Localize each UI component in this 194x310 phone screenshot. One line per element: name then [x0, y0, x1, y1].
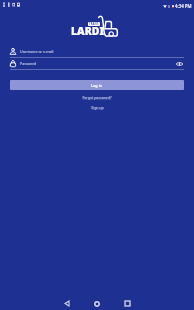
button[interactable]: Home [86, 294, 108, 310]
button[interactable]: Log in [10, 80, 184, 90]
staticText: Password [20, 61, 37, 66]
staticText: Username or e-mail [20, 49, 54, 54]
button[interactable]: Password [10, 58, 184, 69]
button[interactable]: Recents [116, 294, 138, 310]
staticText: Forgot password? [82, 95, 112, 100]
button[interactable]: Sign up [88, 104, 107, 111]
staticText: 4:34 PM [175, 3, 192, 9]
staticText: Log in [91, 83, 103, 88]
button[interactable]: Back [56, 294, 78, 310]
button[interactable]: Username or e-mail [10, 46, 184, 57]
staticText: TRANS [89, 22, 99, 26]
staticText: Sign up [91, 105, 104, 110]
staticText: LARDI [71, 24, 105, 38]
button[interactable]: Show password [175, 59, 184, 68]
button[interactable]: Forgot password? [79, 94, 115, 101]
